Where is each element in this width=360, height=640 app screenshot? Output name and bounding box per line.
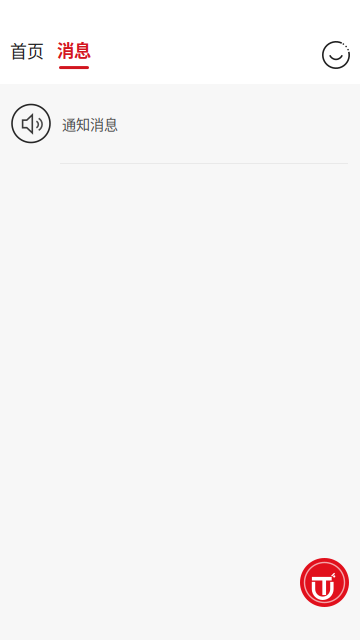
button[interactable]: 首页 — [0, 0, 52, 90]
staticText: 首页 — [10, 38, 44, 62]
staticText: 消息 — [57, 37, 91, 62]
button[interactable]: 通知消息 — [0, 84, 360, 164]
button[interactable]: Customer service — [312, 0, 360, 84]
staticText: 通知消息 — [62, 113, 118, 134]
button[interactable]: 消息 — [52, 0, 106, 82]
button[interactable]: Open assistant — [300, 558, 349, 607]
